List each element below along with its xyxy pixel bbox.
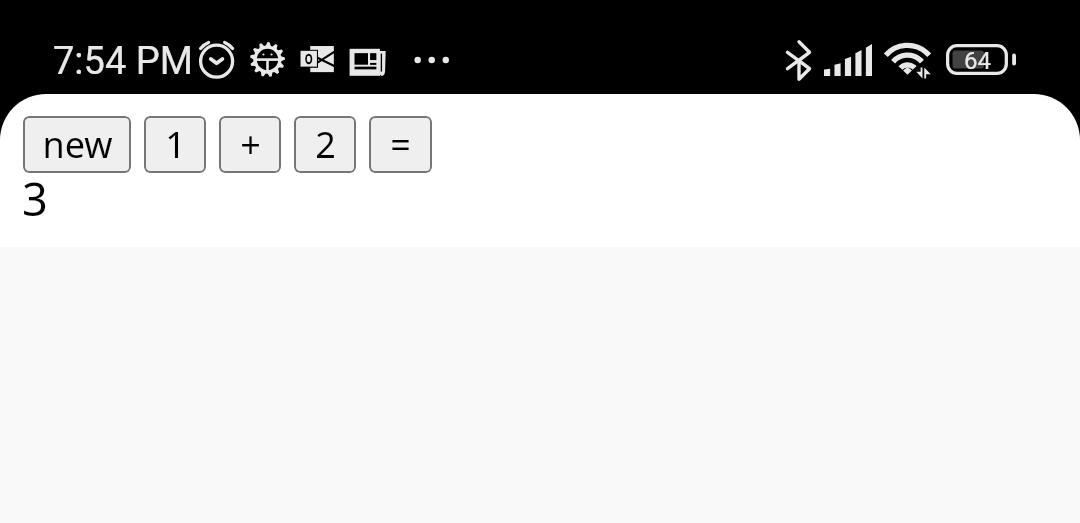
- button[interactable]: =: [369, 116, 432, 173]
- other: Battery 64 percent: [946, 44, 1016, 75]
- staticText: =: [390, 120, 411, 169]
- staticText: 1: [165, 120, 186, 169]
- staticText: 7:54 PM: [53, 39, 193, 84]
- staticText: 3: [22, 168, 48, 229]
- other: Wi-Fi: [883, 41, 933, 75]
- other: News: [349, 47, 387, 77]
- other: Bluetooth: [786, 41, 811, 80]
- staticText: +: [240, 120, 261, 169]
- staticText: 2: [315, 120, 336, 169]
- other: Cellular signal: [824, 44, 872, 76]
- button[interactable]: new: [23, 116, 131, 173]
- button[interactable]: 1: [144, 116, 206, 173]
- other: Alarm: [197, 41, 237, 81]
- button[interactable]: 2: [294, 116, 356, 173]
- other: Outlook: [300, 44, 336, 73]
- other: More: [413, 53, 449, 67]
- button[interactable]: +: [219, 116, 281, 173]
- staticText: new: [42, 120, 113, 169]
- staticText: 64: [964, 47, 991, 75]
- other: App: [250, 42, 285, 77]
